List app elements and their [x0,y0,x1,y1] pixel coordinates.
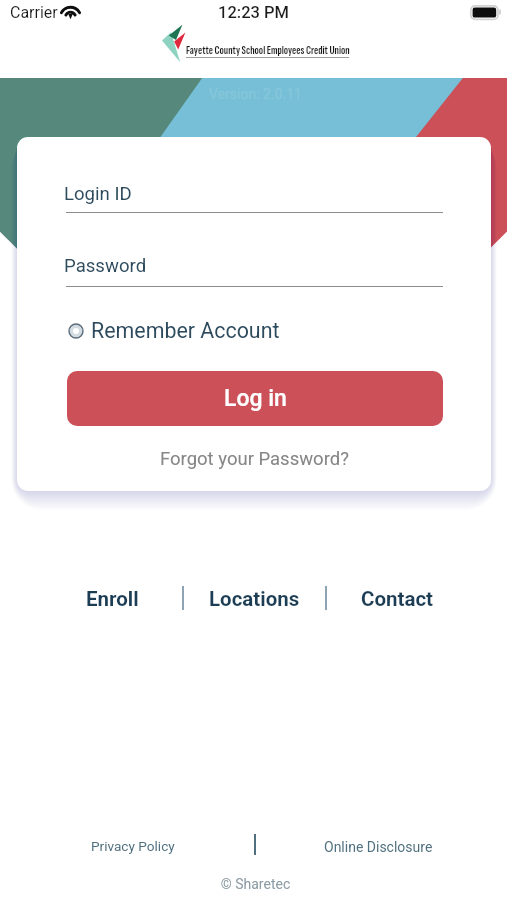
button[interactable]: Contact [351,577,444,621]
staticText: © Sharetec [2,876,507,892]
button[interactable]: Locations [199,577,310,621]
staticText: Log in [224,385,287,412]
staticText: Login ID [64,183,132,205]
staticText: Remember Account [91,318,280,343]
staticText: Fayette County School Employees Credit U… [186,43,350,57]
button[interactable]: Remember Account [68,318,280,343]
button[interactable]: Online Disclosure [314,831,443,863]
button[interactable]: Forgot your Password? [17,448,491,470]
staticText: Privacy Policy [91,838,175,854]
button[interactable]: Privacy Policy [81,830,185,862]
button[interactable]: Enroll [76,577,149,621]
staticText: Online Disclosure [324,839,433,855]
staticText: 12:23 PM [0,3,507,22]
staticText: Version: 2.0.11 [2,86,507,102]
staticText: Forgot your Password? [160,448,349,470]
staticText: Enroll [86,587,139,611]
staticText: Locations [209,587,300,611]
staticText: Contact [361,587,434,611]
button[interactable]: Log in [67,371,443,426]
other: Wi-Fi signal [61,3,80,20]
other: Battery full [470,5,501,20]
staticText: Carrier [10,3,58,22]
staticText: Password [64,255,147,277]
